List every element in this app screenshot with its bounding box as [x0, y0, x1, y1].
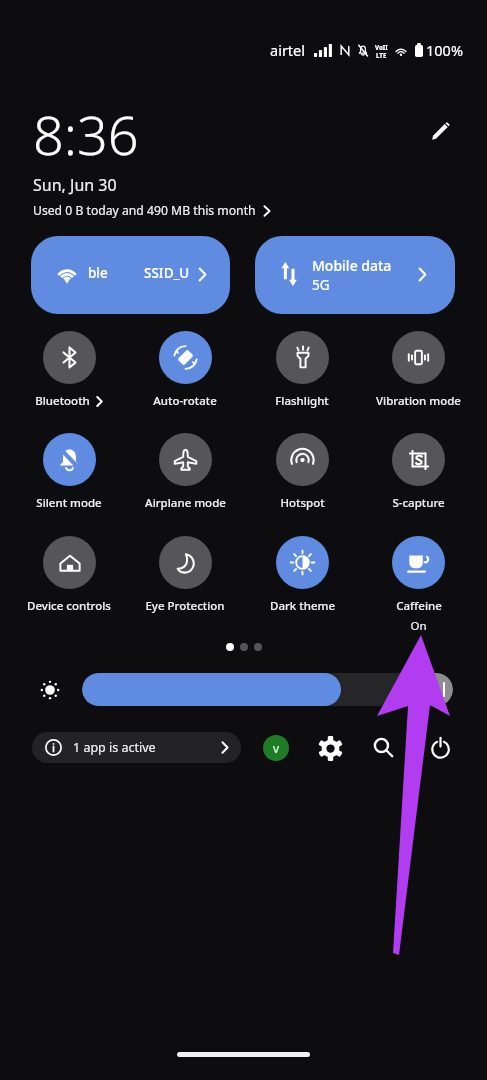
staticText: Dark theme [270, 598, 335, 614]
button[interactable]: ble [31, 236, 230, 314]
button[interactable]: Search [365, 729, 401, 765]
staticText: Sun, Jun 30 [33, 174, 117, 196]
staticText: Airplane mode [145, 495, 226, 511]
staticText: On [410, 618, 427, 634]
button[interactable]: Auto-rotate [128, 331, 242, 429]
staticText: Eye Protection [145, 598, 225, 614]
staticText: Device controls [27, 598, 111, 614]
staticText: 5G [312, 276, 330, 294]
staticText: Auto-rotate [153, 393, 217, 409]
button[interactable]: Settings [312, 730, 348, 766]
staticText: ble [88, 264, 108, 282]
button[interactable]: Device controls [12, 536, 126, 634]
staticText: Vibration mode [376, 393, 461, 409]
staticText: Caffeine [396, 598, 442, 614]
staticText: SSID_U [144, 264, 190, 282]
button[interactable]: Power [422, 729, 458, 765]
button[interactable]: Bluetooth [12, 331, 126, 429]
staticText: Flashlight [275, 393, 329, 409]
button[interactable]: Edit quick settings [420, 111, 460, 151]
staticText: Silent mode [36, 495, 102, 511]
button[interactable]: Flashlight [245, 331, 359, 429]
staticText: Mobile data [312, 256, 392, 275]
staticText: v [273, 740, 280, 756]
staticText: LTE [376, 51, 387, 59]
staticText: S-capture [392, 495, 445, 511]
button[interactable]: Hotspot [245, 433, 359, 531]
staticText: airtel [270, 40, 306, 60]
staticText: 100% [426, 40, 463, 60]
staticText: Used 0 B today and 490 MB this month [33, 202, 256, 219]
button[interactable]: Eye Protection [128, 536, 242, 634]
button[interactable]: 1 app is active [32, 732, 241, 763]
button[interactable]: Account [263, 735, 289, 761]
button[interactable]: Silent mode [12, 433, 126, 531]
button[interactable]: Mobile data [255, 236, 455, 314]
button[interactable]: Caffeine [361, 536, 475, 634]
staticText: 1 app is active [73, 739, 156, 756]
button[interactable]: Brightness [82, 673, 453, 706]
staticText: VoII [375, 43, 388, 51]
button[interactable]: Airplane mode [128, 433, 242, 531]
button[interactable]: Vibration mode [361, 331, 475, 429]
button[interactable]: Dark theme [245, 536, 359, 634]
button[interactable]: S-capture [361, 433, 475, 531]
staticText: Bluetooth [35, 393, 90, 409]
staticText: Hotspot [280, 495, 325, 511]
staticText: 8:36 [33, 97, 139, 171]
